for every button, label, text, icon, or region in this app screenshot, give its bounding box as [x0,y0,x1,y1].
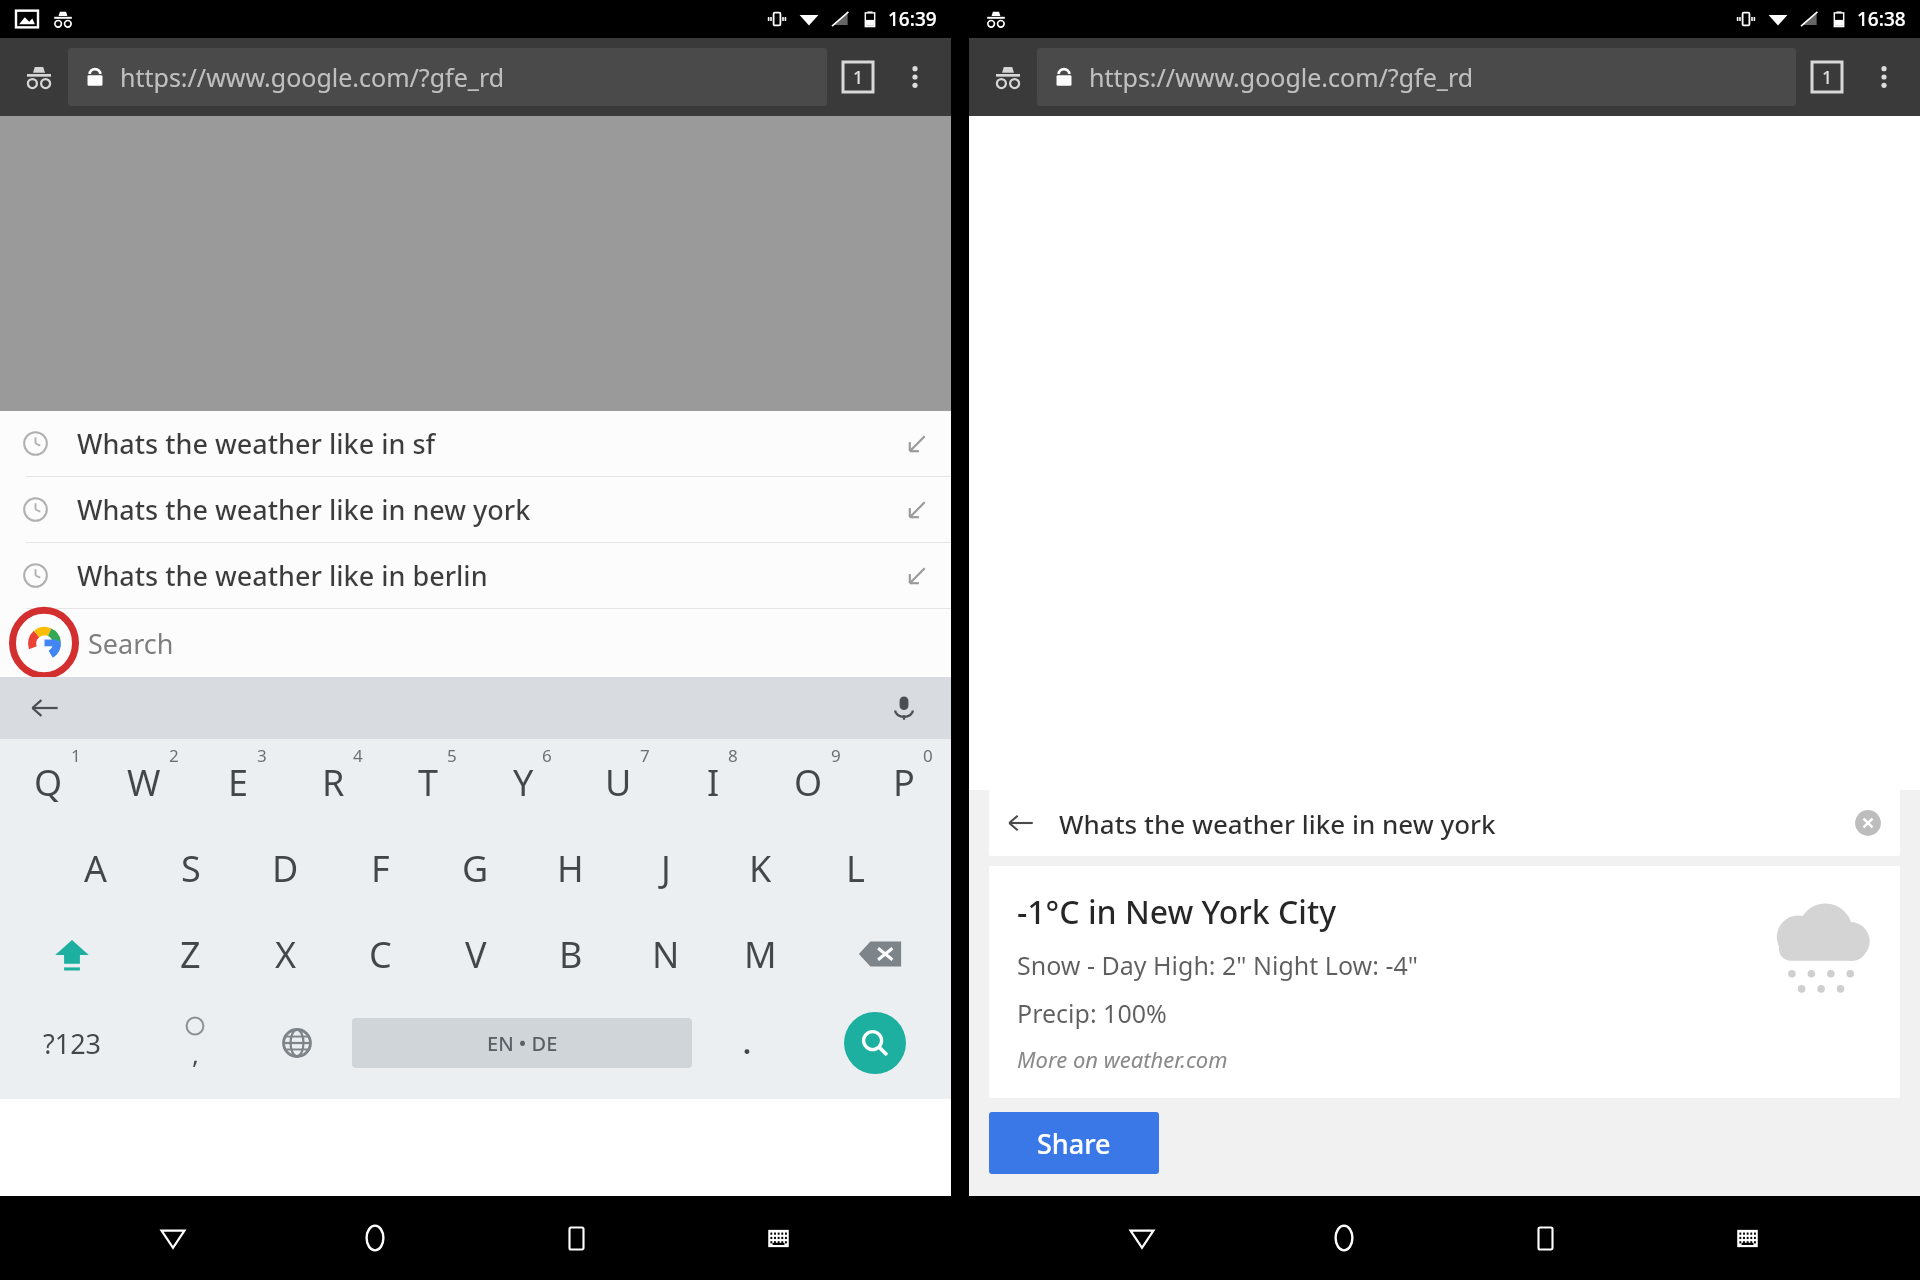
button[interactable]: Whats the weather like in new york [0,477,951,542]
button[interactable]: Search [0,609,951,677]
button[interactable]: U [571,739,666,825]
staticText: Whats the weather like in new york [1059,806,1496,841]
staticText: R [322,758,345,807]
staticText: Snow - Day High: 2" Night Low: -4" [1017,948,1418,982]
staticText: 2 [169,744,179,767]
staticText: G [462,844,489,893]
staticText: -1°C in New York City [1017,890,1337,934]
button[interactable]: EN • DE [352,1018,692,1068]
button[interactable]: L [808,825,903,911]
button[interactable]: Whats the weather like in berlin [0,543,951,608]
button[interactable]: Voice input [881,685,927,731]
staticText: M [744,930,777,979]
button[interactable]: Share [989,1112,1159,1174]
staticText: Search [88,625,174,662]
button[interactable]: I [666,739,761,825]
button[interactable]: T [381,739,476,825]
button[interactable]: Previous suggestion [20,683,70,733]
button[interactable]: B [523,911,618,997]
staticText: U [605,758,632,807]
staticText: 16:38 [1857,6,1906,32]
button[interactable]: M [713,911,808,997]
button[interactable]: Comma and emoji [144,997,246,1089]
button[interactable]: G [428,825,523,911]
staticText: Z [180,930,201,979]
staticText: I [707,758,720,807]
button[interactable]: Incognito [979,48,1037,106]
staticText: Whats the weather like in sf [77,425,436,462]
staticText: 7 [640,744,650,767]
staticText: 9 [831,744,841,767]
staticText: K [749,844,772,893]
button[interactable]: F [333,825,428,911]
button[interactable]: H [523,825,618,911]
staticText: 0 [923,744,933,767]
staticText: T [418,758,439,807]
button[interactable]: P [856,739,951,825]
button[interactable]: A [48,825,143,911]
staticText: Whats the weather like in berlin [77,557,488,594]
button[interactable]: Backspace [808,911,951,997]
button[interactable]: Change language [246,997,348,1089]
staticText: V [465,930,487,979]
button[interactable]: Back [138,1203,208,1273]
button[interactable]: K [713,825,808,911]
button[interactable]: Shift [0,911,143,997]
staticText: J [661,844,671,893]
staticText: 1 [853,65,864,90]
button[interactable]: N [618,911,713,997]
button[interactable]: Whats the weather like in new york [989,790,1900,856]
button[interactable]: Incognito [10,48,68,106]
button[interactable]: Search [798,997,951,1089]
staticText: 8 [728,744,738,767]
button[interactable]: S [143,825,238,911]
staticText: N [652,930,680,979]
staticText: Q [34,758,63,807]
button[interactable]: Tabs [827,46,889,108]
staticText: , [192,1036,199,1071]
button[interactable]: More options [889,51,941,103]
button[interactable]: Keyboard [743,1203,813,1273]
button[interactable]: Tabs [1796,46,1858,108]
button[interactable]: X [238,911,333,997]
staticText: 6 [542,744,552,767]
button[interactable]: Recents [541,1203,611,1273]
staticText: 1 [71,744,81,767]
staticText: Precip: 100% [1017,996,1167,1030]
staticText: S [181,844,201,893]
button[interactable]: Keyboard [1712,1203,1782,1273]
button[interactable]: V [428,911,523,997]
staticText: 3 [257,744,267,767]
staticText: More on weather.com [1017,1044,1228,1074]
button[interactable]: E [191,739,286,825]
button[interactable]: D [238,825,333,911]
staticText: Y [513,758,534,807]
button[interactable]: Whats the weather like in sf [0,411,951,476]
button[interactable]: Y [476,739,571,825]
staticText: C [369,930,392,979]
button[interactable]: Back [1107,1203,1177,1273]
button[interactable]: More options [1858,51,1910,103]
button[interactable]: -1°C in New York City [989,866,1900,1098]
staticText: 1 [1822,65,1833,90]
button[interactable]: W [96,739,191,825]
button[interactable]: https://www.google.com/?gfe_rd [1037,48,1796,106]
button[interactable]: Home [340,1203,410,1273]
button[interactable]: O [761,739,856,825]
button[interactable]: Home [1309,1203,1379,1273]
button[interactable]: https://www.google.com/?gfe_rd [68,48,827,106]
staticText: W [127,758,161,807]
button[interactable]: R [286,739,381,825]
button[interactable]: C [333,911,428,997]
button[interactable]: . [696,997,798,1089]
staticText: X [275,930,297,979]
staticText: 16:39 [888,6,937,32]
button[interactable]: J [618,825,713,911]
staticText: D [272,844,299,893]
button[interactable]: Q [0,739,96,825]
staticText: Share [1037,1125,1111,1162]
button[interactable]: Z [143,911,238,997]
button[interactable]: Recents [1510,1203,1580,1273]
staticText: F [371,844,390,893]
button[interactable]: ?123 [0,997,144,1089]
